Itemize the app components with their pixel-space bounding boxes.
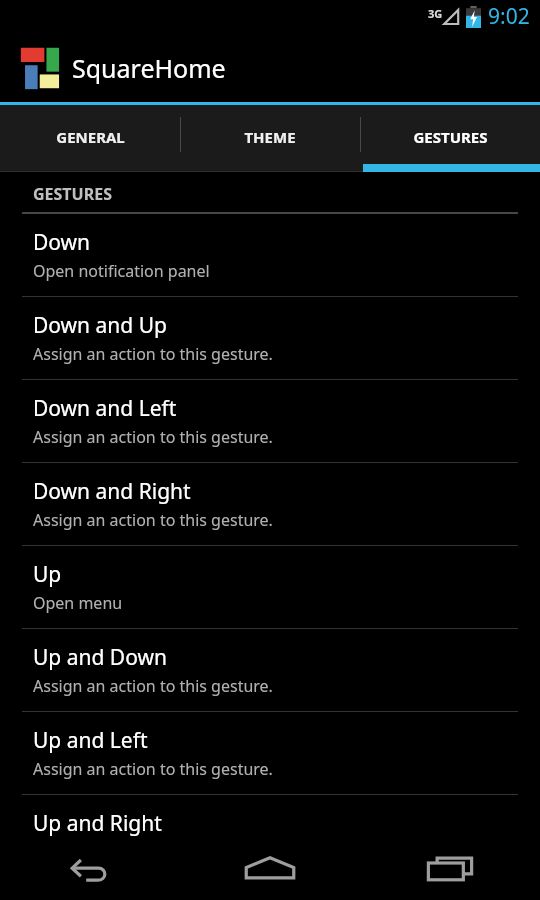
button[interactable]: Back xyxy=(0,838,180,900)
staticText: Assign an action to this gesture. xyxy=(33,343,273,365)
staticText: Assign an action to this gesture. xyxy=(33,426,273,448)
button[interactable]: Down and Up xyxy=(0,297,540,380)
button[interactable]: Home xyxy=(180,838,360,900)
button[interactable]: Down and Left xyxy=(0,380,540,463)
staticText: Down and Up xyxy=(33,311,167,340)
staticText: Up and Left xyxy=(33,726,148,755)
button[interactable]: GESTURES xyxy=(360,105,540,172)
staticText: Assign an action to this gesture. xyxy=(33,509,273,531)
staticText: Assign an action to this gesture. xyxy=(33,675,273,697)
button[interactable]: Recent apps xyxy=(360,838,540,900)
staticText: Down xyxy=(33,228,91,257)
staticText: Down and Left xyxy=(33,394,177,423)
staticText: 9:02 xyxy=(488,2,530,31)
button[interactable]: Up and Down xyxy=(0,629,540,712)
button[interactable]: Down xyxy=(0,214,540,297)
staticText: GESTURES xyxy=(413,127,488,147)
button[interactable]: Up and Left xyxy=(0,712,540,795)
staticText: GESTURES xyxy=(33,183,112,205)
staticText: Up and Right xyxy=(33,809,162,838)
button[interactable]: THEME xyxy=(180,105,360,172)
staticText: Open notification panel xyxy=(33,260,210,282)
staticText: Up and Down xyxy=(33,643,167,672)
staticText: GENERAL xyxy=(56,127,125,147)
staticText: SquareHome xyxy=(72,51,226,85)
button[interactable]: GENERAL xyxy=(0,105,180,172)
staticText: THEME xyxy=(244,127,296,147)
button[interactable]: Down and Right xyxy=(0,463,540,546)
staticText: Assign an action to this gesture. xyxy=(33,758,273,780)
staticText: Down and Right xyxy=(33,477,191,506)
staticText: Up xyxy=(33,560,62,589)
button[interactable]: Up xyxy=(0,546,540,629)
button[interactable]: Up and Right xyxy=(0,795,540,838)
staticText: 3G xyxy=(428,6,443,21)
staticText: Open menu xyxy=(33,592,123,614)
